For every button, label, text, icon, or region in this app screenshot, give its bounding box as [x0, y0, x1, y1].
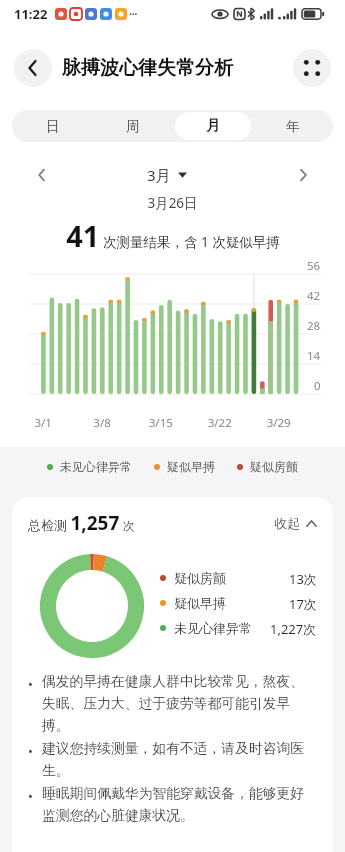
staticText: 周 [126, 118, 140, 135]
staticText: 偶发的早搏在健康人群中比较常见，熬夜、失眠、压力大、过于疲劳等都可能引发早搏。 [42, 673, 314, 735]
staticText: 疑似房颤 [174, 570, 226, 586]
button[interactable]: 年 [253, 110, 333, 142]
button[interactable]: 周 [93, 110, 173, 142]
button[interactable] [28, 161, 56, 189]
staticText: ··· [129, 7, 138, 21]
staticText: 未见心律异常 [174, 620, 252, 636]
staticText: 41 次测量结果，含 1 次疑似早搏 [66, 216, 280, 252]
staticText: 疑似早搏 [174, 595, 226, 611]
staticText: • [28, 675, 42, 693]
button[interactable]: 日 [12, 110, 93, 142]
button[interactable] [14, 49, 52, 87]
staticText: 1,227次 [270, 620, 317, 636]
staticText: 睡眠期间佩戴华为智能穿戴设备，能够更好监测您的心脏健康状况。 [42, 785, 314, 825]
staticText: 17次 [289, 595, 317, 611]
staticText: 13次 [289, 570, 317, 586]
staticText: 未见心律异常 [60, 459, 132, 474]
staticText: 月 [206, 117, 220, 135]
staticText: • [28, 787, 42, 805]
staticText: 建议您持续测量，如有不适，请及时咨询医生。 [42, 740, 314, 780]
staticText: 年 [286, 118, 300, 135]
staticText: 日 [46, 118, 60, 135]
staticText: 3月26日 [0, 194, 345, 214]
staticText: 总检测 1,257 次 [28, 510, 135, 536]
button[interactable]: 月 [175, 112, 251, 140]
staticText: 3月 [147, 165, 171, 185]
staticText: 疑似房颤 [250, 459, 298, 474]
button[interactable]: 总检测 1,257 次 [28, 510, 317, 536]
button[interactable] [293, 49, 331, 87]
staticText: 疑似早搏 [167, 459, 215, 474]
staticText: • [28, 742, 42, 760]
button[interactable] [289, 161, 317, 189]
staticText: 11:22 [14, 5, 48, 23]
button[interactable]: 3月 [147, 165, 187, 185]
staticText: 脉搏波心律失常分析 [62, 56, 233, 80]
staticText: 收起 [274, 515, 300, 531]
